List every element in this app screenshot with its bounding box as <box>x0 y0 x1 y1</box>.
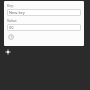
button[interactable]: 00 <box>7 24 81 31</box>
button[interactable]: Set time <box>7 33 14 40</box>
staticText: New key <box>9 10 25 15</box>
button[interactable]: New key <box>7 9 81 16</box>
staticText: Value: <box>7 18 18 23</box>
button[interactable]: Marker <box>4 48 11 55</box>
staticText: 00 <box>9 25 14 30</box>
staticText: Key: <box>7 3 14 8</box>
